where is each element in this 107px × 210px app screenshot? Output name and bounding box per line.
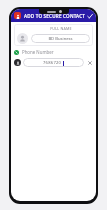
button[interactable]: BD Business xyxy=(31,34,90,43)
staticText: BD Business xyxy=(48,36,73,42)
staticText: ADD TO SECURE CONTACT xyxy=(24,13,86,19)
button[interactable]: Pick contact xyxy=(14,59,21,66)
button[interactable]: 7686720 xyxy=(23,58,84,67)
staticText: Phone Number xyxy=(22,49,54,55)
staticText: FULL NAME xyxy=(50,26,72,31)
button[interactable]: Clear xyxy=(86,59,93,66)
staticText: 7686720 xyxy=(43,60,62,66)
button[interactable]: Contact photo xyxy=(17,33,28,44)
button[interactable]: Save contact xyxy=(86,11,93,21)
